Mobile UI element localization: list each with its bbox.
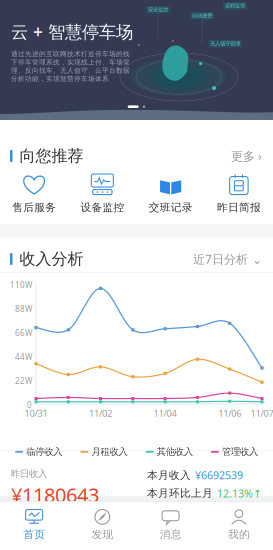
staticText: 110W: [10, 279, 32, 290]
button[interactable]: 发现: [68, 509, 136, 541]
button[interactable]: 售后服务: [0, 174, 68, 214]
staticText: 消息: [160, 528, 182, 541]
staticText: 首页: [23, 528, 45, 541]
staticText: 11/04: [154, 407, 177, 419]
staticText: 自动缴费: [192, 12, 212, 19]
staticText: 通过先进的互联网技术打造停车场的线下停车管理系统，实现线上付、车场管理、反向找车…: [11, 50, 130, 83]
staticText: ¥6692539: [195, 468, 243, 482]
staticText: 本月环比上月: [147, 487, 213, 500]
staticText: 交班记录: [149, 201, 193, 214]
button[interactable]: 我的: [205, 509, 273, 541]
staticText: 安全监控: [148, 6, 168, 13]
staticText: 11/06: [218, 407, 241, 419]
staticText: 我的: [228, 528, 250, 541]
staticText: 0: [27, 399, 32, 410]
staticText: 44W: [15, 351, 32, 362]
staticText: 临停收入: [26, 446, 62, 457]
button[interactable]: 设备监控: [68, 174, 136, 214]
staticText: 66W: [15, 327, 32, 338]
staticText: 本月收入: [147, 468, 191, 482]
staticText: 向您推荐: [19, 146, 83, 166]
staticText: 11/07: [250, 407, 273, 419]
staticText: 11/02: [89, 407, 112, 419]
staticText: 售后服务: [12, 201, 56, 214]
staticText: 12.13%↑: [217, 486, 262, 500]
button[interactable]: 交班记录: [136, 174, 205, 214]
staticText: 更多 ›: [231, 148, 262, 164]
staticText: 昨日收入: [11, 468, 47, 479]
staticText: 22W: [15, 375, 32, 386]
staticText: 近7日分析 ⌄: [193, 251, 262, 267]
staticText: 管理收入: [222, 446, 258, 457]
staticText: 月租收入: [91, 446, 127, 457]
staticText: ¥1180643: [11, 481, 99, 508]
button[interactable]: 消息: [136, 509, 205, 541]
staticText: 设备监控: [80, 201, 124, 214]
staticText: 昨日简报: [217, 201, 261, 214]
staticText: 发现: [91, 528, 113, 541]
button[interactable]: 近7日分析 ⌄: [193, 251, 262, 267]
staticText: 无人值守管理: [210, 40, 240, 47]
staticText: 远程监管: [225, 2, 245, 9]
staticText: 收入分析: [19, 249, 83, 269]
staticText: 88W: [15, 303, 32, 314]
button[interactable]: 更多 ›: [231, 148, 262, 164]
staticText: 10/31: [24, 407, 47, 419]
button[interactable]: 昨日简报: [205, 174, 273, 214]
staticText: 云 + 智慧停车场: [11, 20, 133, 43]
staticText: 其他收入: [157, 446, 193, 457]
button[interactable]: 首页: [0, 509, 68, 541]
